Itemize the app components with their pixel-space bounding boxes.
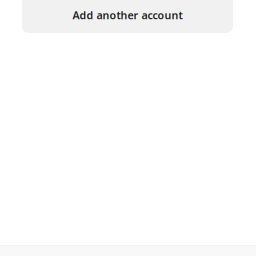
- button[interactable]: Add another account: [22, 0, 233, 33]
- staticText: Add another account: [72, 8, 182, 22]
